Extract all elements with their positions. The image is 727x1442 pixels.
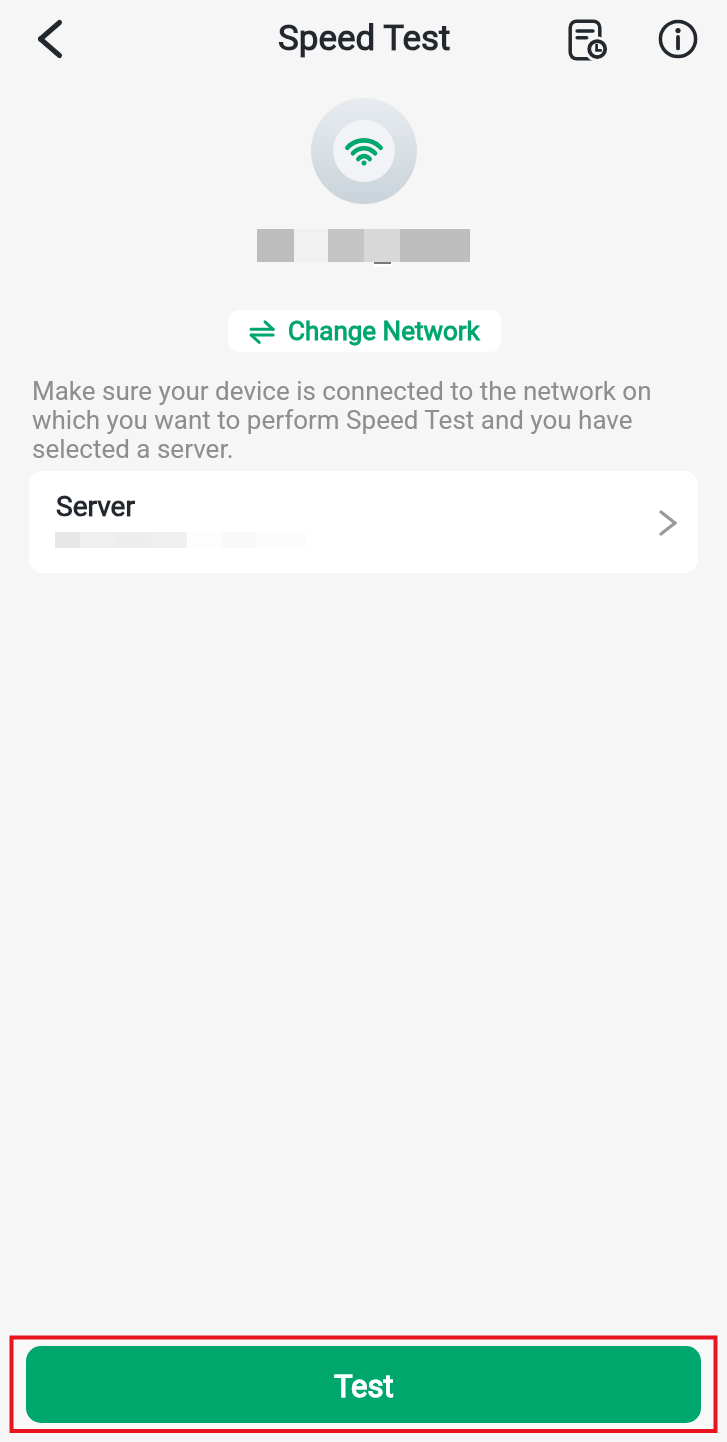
staticText: Speed Test: [278, 18, 451, 59]
button[interactable]: Server: [29, 471, 698, 573]
staticText: Change Network: [288, 316, 480, 346]
staticText: Server: [56, 490, 135, 523]
button[interactable]: History: [552, 3, 624, 75]
staticText: Test: [334, 1368, 394, 1404]
button[interactable]: Back: [14, 3, 86, 75]
button[interactable]: Test: [26, 1346, 701, 1423]
button[interactable]: Info: [642, 3, 714, 75]
staticText: Make sure your device is connected to th…: [32, 376, 701, 464]
button[interactable]: Change Network: [228, 310, 501, 352]
